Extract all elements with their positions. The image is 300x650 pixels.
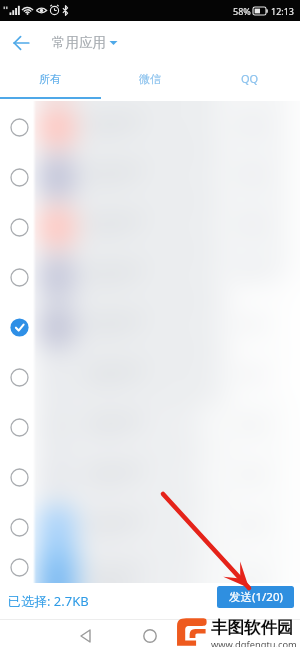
button[interactable] <box>0 402 300 452</box>
button[interactable] <box>0 252 300 302</box>
button[interactable] <box>0 202 300 252</box>
staticText: QQ <box>241 71 259 86</box>
button[interactable] <box>0 552 300 583</box>
button[interactable] <box>0 102 300 152</box>
button[interactable] <box>0 502 300 552</box>
button[interactable]: 已选择: 2.7KB <box>8 592 89 610</box>
button[interactable] <box>0 452 300 502</box>
button[interactable] <box>0 152 300 202</box>
staticText: 58% <box>233 5 251 17</box>
button[interactable]: Back <box>7 29 35 57</box>
button[interactable]: 微信 <box>100 64 200 101</box>
button[interactable] <box>0 352 300 402</box>
button[interactable]: 所有 <box>0 64 100 101</box>
staticText: 发送(1/20) <box>229 589 283 605</box>
staticText: www.dgfengtu.com <box>211 638 297 647</box>
staticText: 微信 <box>139 72 161 86</box>
staticText: 已选择: 2.7KB <box>8 592 89 610</box>
staticText: 所有 <box>39 72 61 86</box>
button[interactable]: QQ <box>200 64 300 101</box>
staticText: 12:13 <box>271 5 295 17</box>
button[interactable]: 常用应用 <box>52 34 118 51</box>
button[interactable] <box>0 302 300 352</box>
staticText: 丰图软件园 <box>211 617 294 638</box>
button[interactable]: 发送(1/20) <box>217 586 294 608</box>
staticText: 常用应用 <box>52 34 106 51</box>
